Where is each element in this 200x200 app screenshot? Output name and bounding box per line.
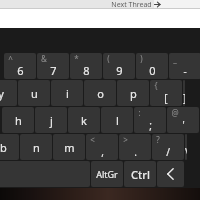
staticText: 9 — [116, 63, 123, 78]
button[interactable]: @ — [167, 107, 199, 133]
button[interactable]: Left arrow — [157, 161, 184, 187]
staticText: 6 — [17, 63, 24, 78]
staticText: [ — [164, 91, 168, 105]
button[interactable]: ? — [152, 134, 184, 160]
button[interactable]: | — [185, 134, 187, 160]
button[interactable]: o — [84, 80, 116, 106]
button[interactable]: ( — [103, 53, 135, 79]
staticText: Next Thread — [111, 0, 152, 8]
staticText: ^ — [8, 53, 13, 64]
staticText: { — [154, 80, 158, 91]
button[interactable]: } — [183, 80, 185, 106]
staticText: \ — [185, 145, 187, 159]
staticText: ( — [107, 53, 110, 64]
staticText: : — [138, 107, 141, 118]
button[interactable]: k — [68, 107, 100, 133]
staticText: / — [166, 145, 170, 159]
button[interactable]: j — [35, 107, 67, 133]
button[interactable]: y — [0, 80, 17, 106]
staticText: b — [0, 140, 7, 155]
staticText: _ — [173, 53, 177, 64]
staticText: ] — [183, 91, 185, 105]
button[interactable]: < — [86, 134, 118, 160]
staticText: 8 — [83, 63, 90, 78]
button[interactable]: & — [37, 53, 69, 79]
button[interactable]: AltGr — [91, 161, 123, 187]
staticText: y — [0, 86, 4, 101]
staticText: ? — [156, 134, 160, 145]
staticText: , — [101, 145, 104, 159]
staticText: Ctrl — [131, 167, 150, 182]
staticText: * — [74, 53, 79, 64]
staticText: u — [31, 86, 38, 101]
staticText: o — [97, 86, 104, 101]
staticText: m — [64, 140, 75, 155]
button[interactable]: l — [101, 107, 133, 133]
staticText: h — [15, 113, 22, 128]
button[interactable]: : — [134, 107, 166, 133]
staticText: AltGr — [96, 168, 118, 180]
staticText: n — [33, 140, 40, 155]
button[interactable]: { — [150, 80, 182, 106]
button[interactable]: u — [18, 80, 50, 106]
button[interactable]: h — [2, 107, 34, 133]
staticText: - — [183, 64, 187, 78]
staticText: k — [81, 113, 87, 128]
staticText: ) — [140, 53, 143, 64]
button[interactable]: Ctrl — [124, 161, 156, 187]
staticText: l — [116, 113, 119, 128]
staticText: . — [134, 145, 137, 159]
button[interactable]: * — [70, 53, 102, 79]
button[interactable]: n — [20, 134, 52, 160]
button[interactable]: m — [53, 134, 85, 160]
button[interactable]: Next Thread — [111, 0, 161, 8]
staticText: & — [41, 53, 47, 64]
staticText: < — [90, 134, 95, 145]
button[interactable]: b — [0, 134, 19, 160]
staticText: j — [50, 113, 53, 128]
staticText: i — [66, 86, 69, 101]
staticText: > — [123, 134, 128, 145]
button[interactable]: i — [51, 80, 83, 106]
staticText: ' — [182, 118, 185, 132]
staticText: @ — [171, 107, 179, 118]
staticText: ; — [149, 118, 152, 132]
button[interactable]: > — [119, 134, 151, 160]
button[interactable]: _ — [169, 53, 200, 79]
button[interactable]: ^ — [4, 53, 36, 79]
staticText: 7 — [50, 63, 57, 78]
button[interactable]: p — [117, 80, 149, 106]
staticText: 0 — [149, 63, 156, 78]
button[interactable]: ) — [136, 53, 168, 79]
staticText: p — [130, 86, 137, 101]
